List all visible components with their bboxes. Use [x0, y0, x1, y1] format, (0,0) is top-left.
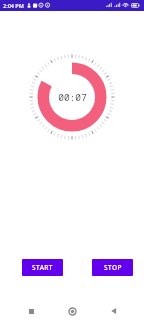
staticText: 00:07	[58, 91, 87, 104]
button[interactable]: START	[22, 259, 63, 276]
button[interactable]: Back	[103, 302, 125, 320]
staticText: 2:04 PM	[3, 2, 24, 9]
staticText: START	[32, 263, 53, 272]
button[interactable]: Recent apps	[20, 302, 42, 320]
button[interactable]: STOP	[92, 259, 133, 276]
staticText: STOP	[104, 263, 122, 272]
button[interactable]: Home	[61, 302, 83, 320]
